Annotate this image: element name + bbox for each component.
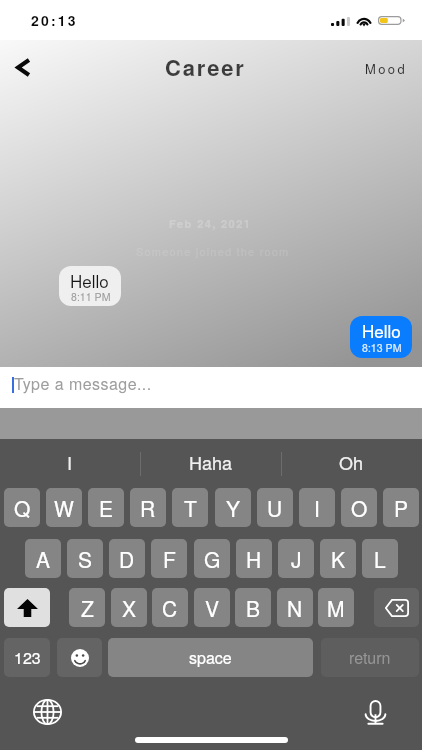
staticText: Feb 24, 2021 (169, 216, 252, 232)
button[interactable]: V (194, 588, 230, 627)
button[interactable]: Emoji keyboard (57, 638, 102, 677)
button[interactable]: T (172, 488, 208, 527)
staticText: I (314, 493, 320, 523)
staticText: P (394, 493, 409, 523)
staticText: I (67, 449, 73, 475)
button[interactable]: D (109, 539, 145, 578)
staticText: K (331, 544, 346, 574)
staticText: Type a message... (14, 372, 152, 395)
button[interactable]: P (383, 488, 419, 527)
button[interactable]: 123 (4, 638, 50, 677)
staticText: A (36, 544, 51, 574)
staticText: Hello (70, 268, 109, 292)
staticText: Oh (339, 449, 364, 475)
button[interactable]: return (321, 638, 419, 677)
staticText: F (163, 544, 176, 574)
staticText: Haha (189, 449, 233, 475)
button[interactable]: I (0, 447, 140, 477)
staticText: Hello (362, 318, 401, 342)
staticText: N (287, 593, 303, 623)
staticText: C (162, 593, 178, 623)
staticText: Z (81, 593, 94, 623)
button[interactable]: J (278, 539, 314, 578)
button[interactable]: K (320, 539, 356, 578)
staticText: 8:11 PM (71, 289, 111, 304)
staticText: V (205, 593, 220, 623)
button[interactable]: E (88, 488, 124, 527)
button[interactable]: W (46, 488, 82, 527)
staticText: 123 (14, 646, 41, 669)
staticText: G (204, 544, 221, 574)
button[interactable]: Haha (141, 447, 280, 477)
staticText: B (246, 593, 261, 623)
button[interactable]: U (257, 488, 293, 527)
staticText: Mood (365, 59, 408, 78)
button[interactable]: F (151, 539, 187, 578)
staticText: H (246, 544, 262, 574)
button[interactable]: H (236, 539, 272, 578)
staticText: 20:13 (31, 10, 78, 30)
button[interactable]: Backspace (374, 588, 419, 627)
button[interactable]: Mood (356, 52, 416, 84)
button[interactable]: Back (6, 50, 40, 84)
button[interactable]: L (362, 539, 398, 578)
staticText: space (189, 646, 232, 669)
button[interactable]: N (277, 588, 313, 627)
button[interactable]: Y (215, 488, 251, 527)
staticText: M (327, 593, 345, 623)
button[interactable]: Shift (4, 588, 50, 627)
staticText: Q (14, 493, 31, 523)
staticText: W (54, 493, 74, 523)
button[interactable]: I (299, 488, 335, 527)
button[interactable]: Oh (281, 447, 422, 477)
staticText: return (349, 646, 391, 669)
staticText: 8:13 PM (362, 340, 402, 355)
staticText: U (267, 493, 283, 523)
staticText: T (184, 493, 197, 523)
staticText: J (291, 544, 302, 574)
button[interactable]: Q (4, 488, 40, 527)
staticText: X (122, 593, 137, 623)
staticText: E (99, 493, 114, 523)
button[interactable]: Type a message... (0, 367, 422, 408)
staticText: D (119, 544, 135, 574)
staticText: Someone joined the room (136, 243, 290, 259)
button[interactable]: R (130, 488, 166, 527)
button[interactable]: Z (69, 588, 105, 627)
button[interactable]: Voice input (359, 696, 391, 728)
button[interactable]: B (235, 588, 271, 627)
button[interactable]: M (318, 588, 354, 627)
staticText: Y (226, 493, 241, 523)
button[interactable]: A (25, 539, 61, 578)
button[interactable]: C (152, 588, 188, 627)
staticText: S (78, 544, 93, 574)
button[interactable]: Hello (59, 266, 121, 306)
button[interactable]: Change keyboard (31, 696, 63, 728)
staticText: L (374, 544, 386, 574)
staticText: R (140, 493, 156, 523)
staticText: O (351, 493, 368, 523)
button[interactable]: space (108, 638, 313, 677)
button[interactable]: G (194, 539, 230, 578)
button[interactable]: S (67, 539, 103, 578)
button[interactable]: Hello (350, 316, 412, 358)
button[interactable]: O (341, 488, 377, 527)
button[interactable]: X (111, 588, 147, 627)
staticText: Career (165, 51, 246, 83)
